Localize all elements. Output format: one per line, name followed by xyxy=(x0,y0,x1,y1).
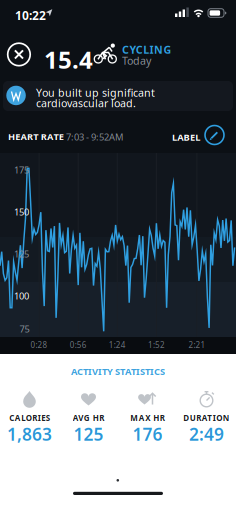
staticText: 15.4 xyxy=(44,43,93,75)
staticText: 1,863 xyxy=(7,422,52,445)
staticText: AVG HR xyxy=(73,413,104,423)
staticText: 2:21 xyxy=(188,340,205,350)
staticText: You built up significant xyxy=(36,85,155,100)
button[interactable]: Edit label xyxy=(171,125,224,144)
staticText: 1:52 xyxy=(148,340,165,350)
staticText: HEART RATE xyxy=(8,130,64,143)
staticText: 2:49 xyxy=(189,422,224,445)
staticText: 0:56 xyxy=(70,340,87,350)
staticText: ACTIVITY STATISTICS xyxy=(71,365,165,378)
staticText: Today xyxy=(122,53,151,68)
staticText: 0:28 xyxy=(31,340,48,350)
staticText: 150 xyxy=(14,206,29,218)
staticText: LABEL xyxy=(172,131,200,143)
staticText: DURATION xyxy=(183,413,230,423)
staticText: 7:03 - 9:52AM xyxy=(66,131,123,143)
button[interactable]: You built up significant xyxy=(3,81,233,111)
staticText: CALORIES xyxy=(9,413,50,423)
staticText: cardiovascular load. xyxy=(36,96,136,110)
staticText: 175 xyxy=(14,164,29,176)
staticText: 125 xyxy=(73,422,103,445)
staticText: CYCLING xyxy=(122,42,171,57)
staticText: MAX HR xyxy=(130,413,165,423)
staticText: 10:22 xyxy=(15,7,46,23)
button[interactable]: Close xyxy=(8,43,30,66)
staticText: 125 xyxy=(14,248,29,260)
staticText: 176 xyxy=(132,422,162,445)
staticText: 75 xyxy=(19,323,29,335)
staticText: 1:24 xyxy=(109,340,126,350)
staticText: 100 xyxy=(14,290,29,302)
